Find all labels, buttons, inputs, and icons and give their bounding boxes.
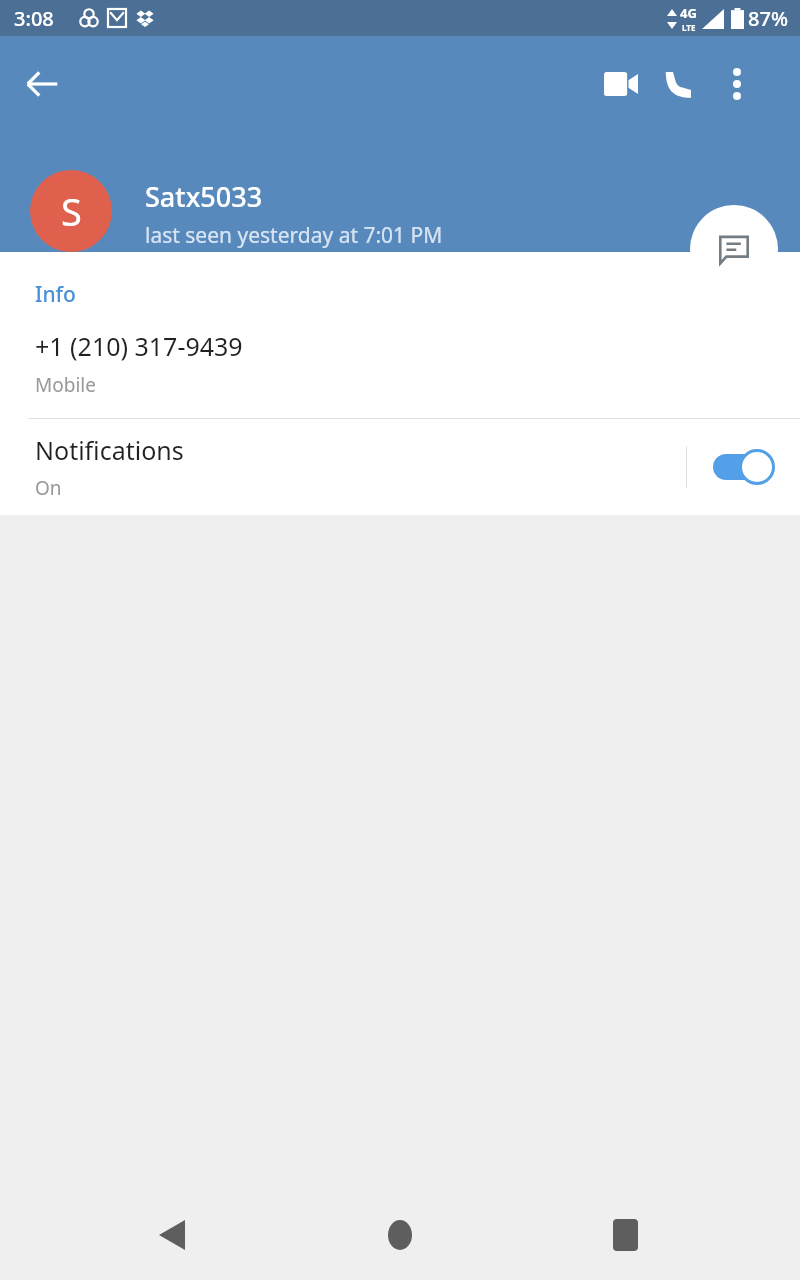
button[interactable]: Recents <box>585 1205 665 1265</box>
staticText: Mobile <box>35 372 96 398</box>
button[interactable]: Back <box>12 54 72 114</box>
button[interactable]: S <box>30 170 112 252</box>
button[interactable]: Send message <box>690 205 778 293</box>
staticText: Info <box>35 280 76 309</box>
button[interactable]: Back <box>132 1205 212 1265</box>
button[interactable]: Call <box>650 54 708 114</box>
staticText: 4G <box>680 4 697 22</box>
button[interactable]: Home <box>360 1205 440 1265</box>
staticText: +1 (210) 317-9439 <box>35 329 243 363</box>
button[interactable]: More options <box>708 54 766 114</box>
staticText: Satx5033 <box>145 178 263 215</box>
staticText: 3:08 <box>14 5 54 32</box>
staticText: last seen yesterday at 7:01 PM <box>145 221 443 250</box>
staticText: LTE <box>682 22 696 33</box>
button[interactable]: Notifications <box>0 419 800 515</box>
staticText: 87% <box>748 5 788 32</box>
staticText: On <box>35 475 62 501</box>
staticText: S <box>61 185 82 237</box>
button[interactable]: Notifications toggle <box>687 419 800 515</box>
staticText: Notifications <box>35 433 184 467</box>
button[interactable]: Info <box>0 252 800 418</box>
button[interactable]: Video call <box>592 54 650 114</box>
